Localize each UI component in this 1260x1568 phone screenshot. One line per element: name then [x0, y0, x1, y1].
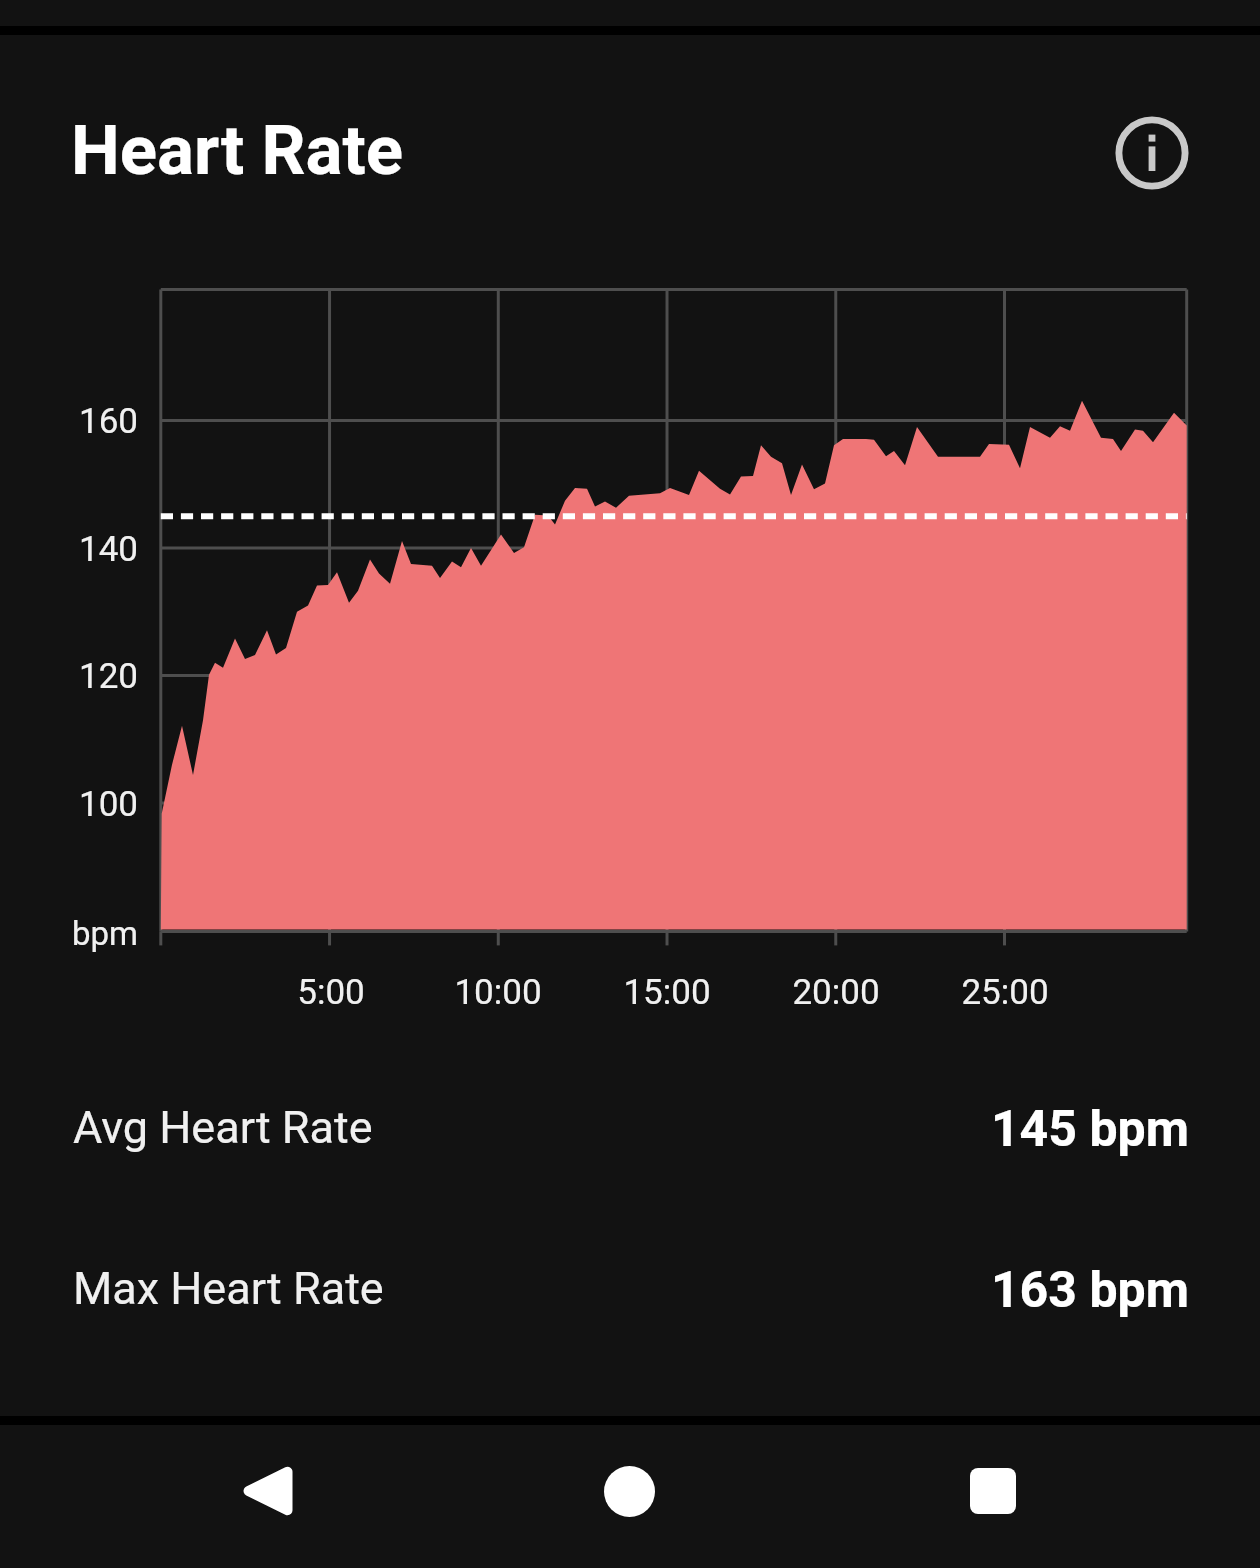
staticText: 140 [0, 529, 138, 570]
button[interactable]: Max Heart Rate [0, 1234, 1260, 1346]
staticText: 163 bpm [0, 1261, 1189, 1320]
staticText: Max Heart Rate [73, 1262, 384, 1315]
staticText: 145 bpm [0, 1100, 1189, 1159]
staticText: Avg Heart Rate [73, 1101, 373, 1154]
staticText: 120 [0, 656, 138, 697]
button[interactable]: Avg Heart Rate [0, 1073, 1260, 1185]
staticText: Heart Rate [71, 110, 404, 191]
staticText: 20:00 [746, 972, 926, 1013]
staticText: 10:00 [408, 972, 588, 1013]
staticText: 160 [0, 401, 138, 442]
staticText: 15:00 [577, 972, 757, 1013]
button[interactable]: Recent apps [923, 1421, 1063, 1561]
staticText: bpm [0, 914, 138, 953]
button[interactable]: Home [559, 1421, 699, 1561]
button[interactable]: Info [1104, 105, 1200, 201]
staticText: 25:00 [915, 972, 1095, 1013]
staticText: 5:00 [241, 972, 421, 1013]
button[interactable]: Back [196, 1421, 336, 1561]
staticText: 100 [0, 784, 138, 825]
